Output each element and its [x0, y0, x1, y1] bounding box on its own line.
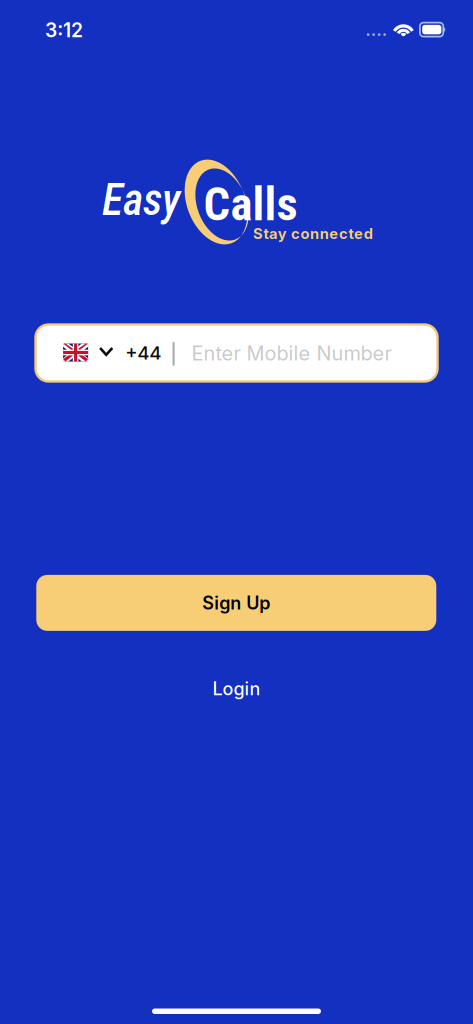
button[interactable]: Login	[196, 670, 276, 707]
staticText: Calls	[204, 177, 298, 232]
staticText: Login	[212, 678, 260, 699]
staticText: Stay connected	[253, 225, 373, 242]
staticText: +44	[125, 341, 161, 364]
button[interactable]: Select country code, currently plus 44	[35, 324, 174, 381]
staticText: 3:12	[45, 19, 83, 42]
staticText: Enter Mobile Number	[191, 341, 391, 365]
staticText: Sign Up	[202, 592, 270, 614]
staticText: Easy	[102, 174, 180, 226]
button[interactable]: Sign Up	[36, 575, 436, 631]
